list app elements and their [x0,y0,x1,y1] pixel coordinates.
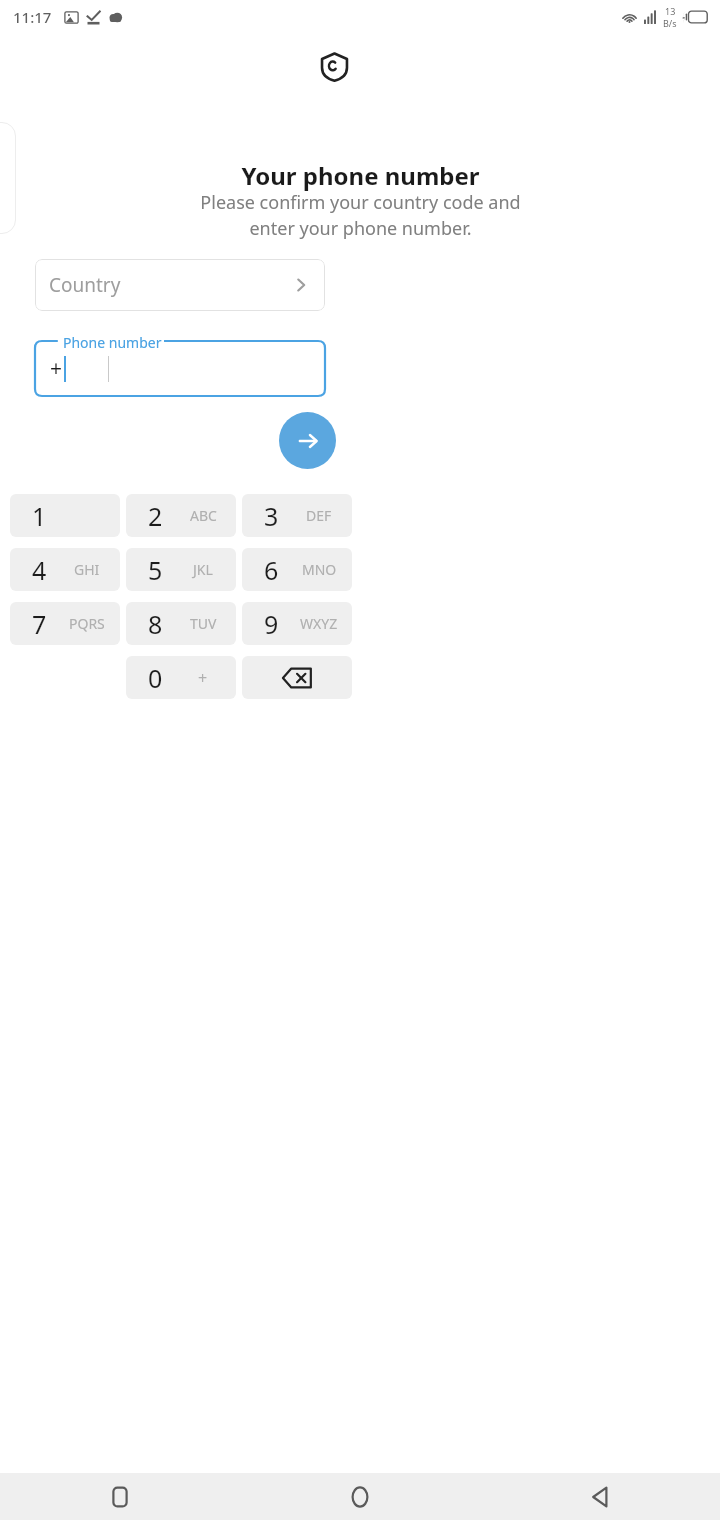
staticText: + [198,667,208,689]
button[interactable]: 4 [10,548,120,591]
button[interactable]: 2 [126,494,236,537]
staticText: Country [49,272,121,298]
staticText: 2 [148,499,163,533]
staticText: Phone number [63,333,162,352]
staticText: DEF [306,506,332,525]
staticText: JKL [193,560,213,579]
button[interactable]: 7 [10,602,120,645]
staticText: PQRS [69,614,105,633]
button[interactable]: 1 [10,494,120,537]
staticText: B/s [663,17,677,29]
button[interactable]: Home [240,1473,480,1520]
staticText: 1 [32,499,47,533]
button[interactable]: 3 [242,494,352,537]
staticText: WXYZ [300,614,338,633]
button[interactable]: Country [35,259,325,311]
staticText: 11:17 [13,7,52,27]
staticText: 9 [264,607,279,641]
staticText: 4 [32,553,47,587]
staticText: 8 [148,607,163,641]
button[interactable]: Recents [0,1473,240,1520]
button[interactable]: Backspace [242,656,352,699]
staticText: 7 [32,607,47,641]
staticText: 6 [264,553,279,587]
staticText: ABC [190,506,217,525]
button[interactable]: Next [279,412,336,469]
staticText: MNO [302,560,337,579]
staticText: 5 [148,553,163,587]
button[interactable]: Back [480,1473,720,1520]
button[interactable]: 5 [126,548,236,591]
button[interactable]: 6 [242,548,352,591]
button[interactable]: 0 [126,656,236,699]
staticText: GHI [74,560,100,579]
button[interactable]: Privacy [312,44,356,88]
button[interactable]: 8 [126,602,236,645]
staticText: Please confirm your country code and ent… [200,190,521,240]
staticText: 3 [264,499,279,533]
staticText: + [50,354,63,383]
staticText: TUV [190,614,217,633]
button[interactable]: 9 [242,602,352,645]
staticText: 13 [665,5,676,17]
staticText: 0 [148,661,163,695]
staticText: Your phone number [241,159,480,192]
